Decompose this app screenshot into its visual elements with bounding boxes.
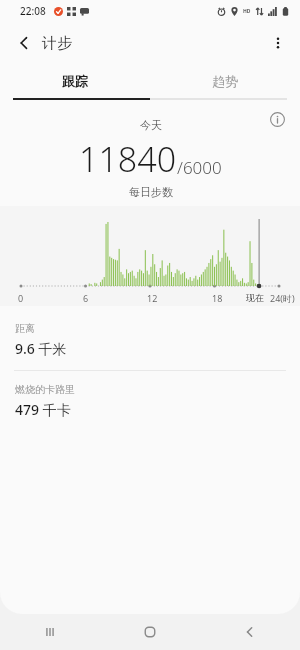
button[interactable]: Information [262,104,292,134]
staticText: 燃烧的卡路里 [15,383,75,396]
button[interactable]: 距离 [0,318,300,362]
staticText: 距离 [15,322,35,335]
staticText: 24(时) [270,292,295,304]
button[interactable]: Back [200,614,300,650]
staticText: 9.6 千米 [15,339,67,358]
button[interactable]: Back [8,27,40,59]
button[interactable]: Home [100,614,200,650]
button[interactable]: More options [262,27,294,59]
staticText: 6 [83,292,89,304]
staticText: 每日步数 [129,185,173,199]
staticText: HD [243,8,251,15]
button[interactable]: 趋势 [150,64,300,98]
staticText: 趋势 [212,73,238,89]
staticText: 11840 [79,136,177,182]
staticText: 计步 [42,34,72,53]
button[interactable]: Recent apps [0,614,100,650]
staticText: 跟踪 [62,73,88,89]
staticText: 12 [147,292,158,304]
staticText: 22:08 [20,4,46,18]
staticText: 479 千卡 [15,400,71,419]
staticText: 0 [18,292,24,304]
staticText: /6000 [177,156,222,179]
staticText: 18 [212,292,223,304]
button[interactable]: 燃烧的卡路里 [0,379,300,423]
staticText: 现在 [246,292,264,303]
button[interactable]: 跟踪 [0,64,150,98]
staticText: 今天 [140,118,162,132]
